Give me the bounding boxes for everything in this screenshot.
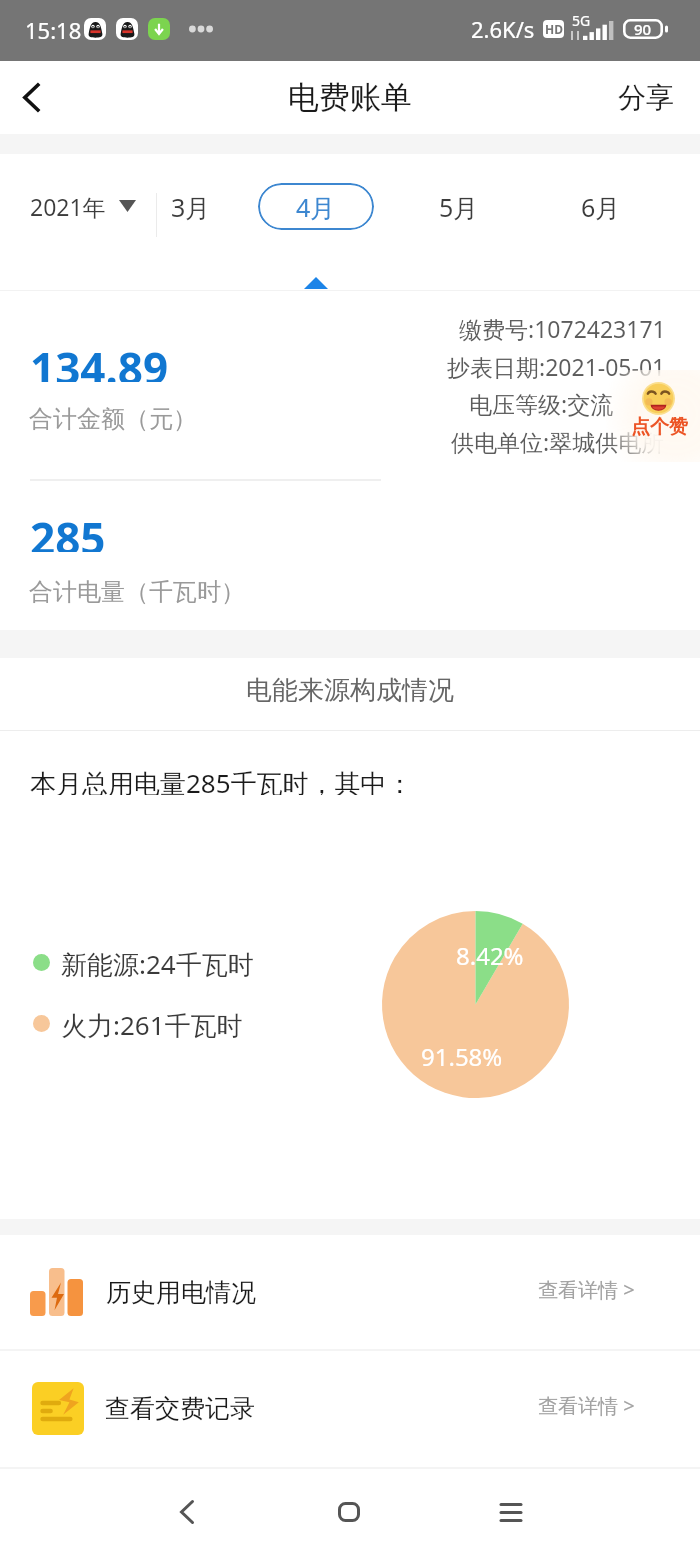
staticText: 134.89 [30,338,169,382]
staticText: 火力:261千瓦时 [61,1007,243,1039]
button[interactable]: 2021年 [30,182,136,230]
staticText: 电费账单 [288,78,412,117]
button[interactable]: 查看交费记录 [0,1351,700,1465]
staticText: 285 [30,508,106,552]
staticText: 2021年 [30,191,106,222]
staticText: 合计金额（元） [29,404,197,434]
staticText: 分享 [618,80,674,115]
staticText: 缴费号:1072423171 [459,313,666,344]
staticText: 点个赞 [631,415,688,439]
staticText: 8.42% [456,939,524,972]
staticText: 15:18 [25,15,82,45]
button[interactable]: Back [0,61,64,134]
staticText: 新能源:24千瓦时 [61,946,254,978]
staticText: 本月总用电量285千瓦时，其中： [30,765,413,795]
staticText: 3月 [171,190,211,224]
button[interactable]: 5月 [419,183,499,230]
staticText: 电能来源构成情况 [246,674,454,707]
button[interactable]: 4月 [258,183,374,230]
staticText: 4月 [296,190,336,224]
staticText: 91.58% [421,1040,503,1073]
staticText: 2.6K/s [471,14,535,44]
button[interactable]: Recents [471,1469,551,1555]
staticText: 5月 [439,190,479,224]
button[interactable]: 6月 [561,183,641,230]
staticText: 查看交费记录 [105,1393,255,1424]
button[interactable]: 3月 [157,183,231,230]
button[interactable]: Back [147,1469,227,1555]
staticText: 电压等级:交流 [469,388,614,419]
staticText: 5G [572,11,591,30]
staticText: 6月 [581,190,621,224]
staticText: 合计电量（千瓦时） [29,577,245,607]
staticText: 90 [634,19,652,39]
staticText: 查看详情 > [538,1276,635,1303]
staticText: 查看详情 > [538,1392,635,1419]
staticText: 历史用电情况 [106,1277,256,1308]
staticText: 供电单位:翠城供电所 [451,426,665,457]
button[interactable]: 分享 [596,61,700,134]
staticText: 抄表日期:2021-05-01 [447,351,666,382]
staticText: HD [545,21,563,37]
button[interactable]: Home [309,1469,389,1555]
button[interactable]: 历史用电情况 [0,1235,700,1349]
